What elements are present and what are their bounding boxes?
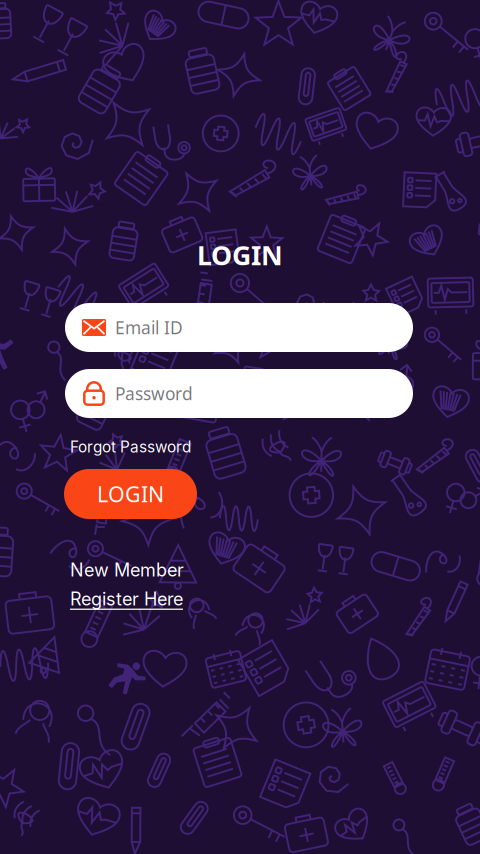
button[interactable]: Email ID: [65, 303, 413, 352]
staticText: Password: [115, 382, 193, 405]
staticText: LOGIN: [197, 237, 283, 273]
staticText: Email ID: [115, 316, 183, 339]
staticText: LOGIN: [97, 480, 164, 508]
staticText: Forgot Password: [70, 438, 191, 456]
button[interactable]: Register Here: [70, 587, 186, 611]
button[interactable]: Forgot Password: [70, 436, 196, 458]
button[interactable]: LOGIN: [64, 469, 197, 519]
staticText: Register Here: [70, 588, 183, 610]
staticText: New Member: [70, 559, 184, 581]
button[interactable]: Password: [65, 369, 413, 418]
